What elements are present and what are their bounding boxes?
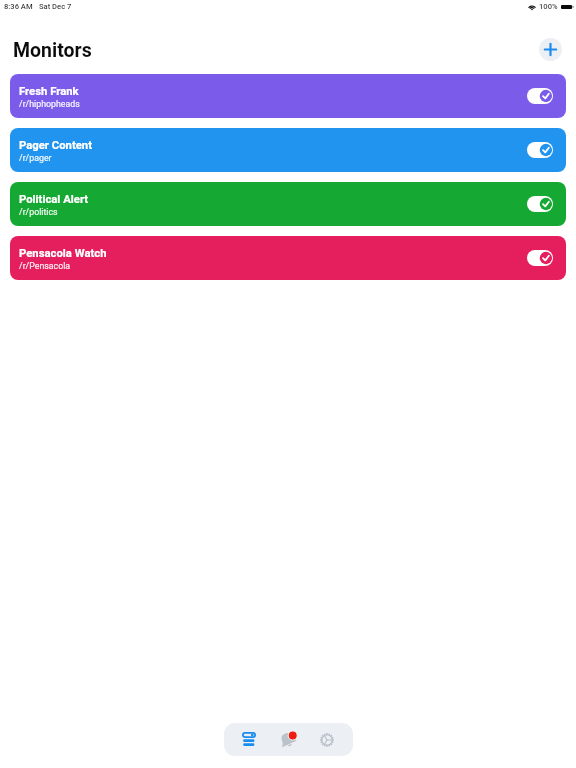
button[interactable]: Toggle monitor — [527, 88, 553, 104]
staticText: 100% — [539, 2, 558, 11]
staticText: Sat Dec 7 — [39, 2, 72, 11]
staticText: Political Alert — [19, 193, 89, 206]
staticText: Monitors — [13, 39, 92, 62]
staticText: Fresh Frank — [19, 85, 79, 98]
button[interactable]: Political Alert — [10, 182, 566, 226]
button[interactable]: Monitors — [229, 723, 269, 756]
button[interactable]: Pager Content — [10, 128, 566, 172]
staticText: Pensacola Watch — [19, 247, 107, 260]
staticText: /r/politics — [19, 207, 58, 217]
button[interactable]: Toggle monitor — [527, 250, 553, 266]
button[interactable]: Toggle monitor — [527, 196, 553, 212]
button[interactable]: Settings — [308, 723, 346, 756]
button[interactable]: Pensacola Watch — [10, 236, 566, 280]
button[interactable]: Notifications — [268, 723, 306, 756]
staticText: 8:36 AM — [4, 2, 33, 11]
staticText: Pager Content — [19, 139, 92, 152]
staticText: /r/hiphopheads — [19, 99, 80, 109]
button[interactable]: Toggle monitor — [527, 142, 553, 158]
staticText: /r/Pensacola — [19, 261, 71, 271]
staticText: /r/pager — [19, 153, 52, 163]
button[interactable]: Add monitor — [539, 38, 562, 61]
button[interactable]: Fresh Frank — [10, 74, 566, 118]
